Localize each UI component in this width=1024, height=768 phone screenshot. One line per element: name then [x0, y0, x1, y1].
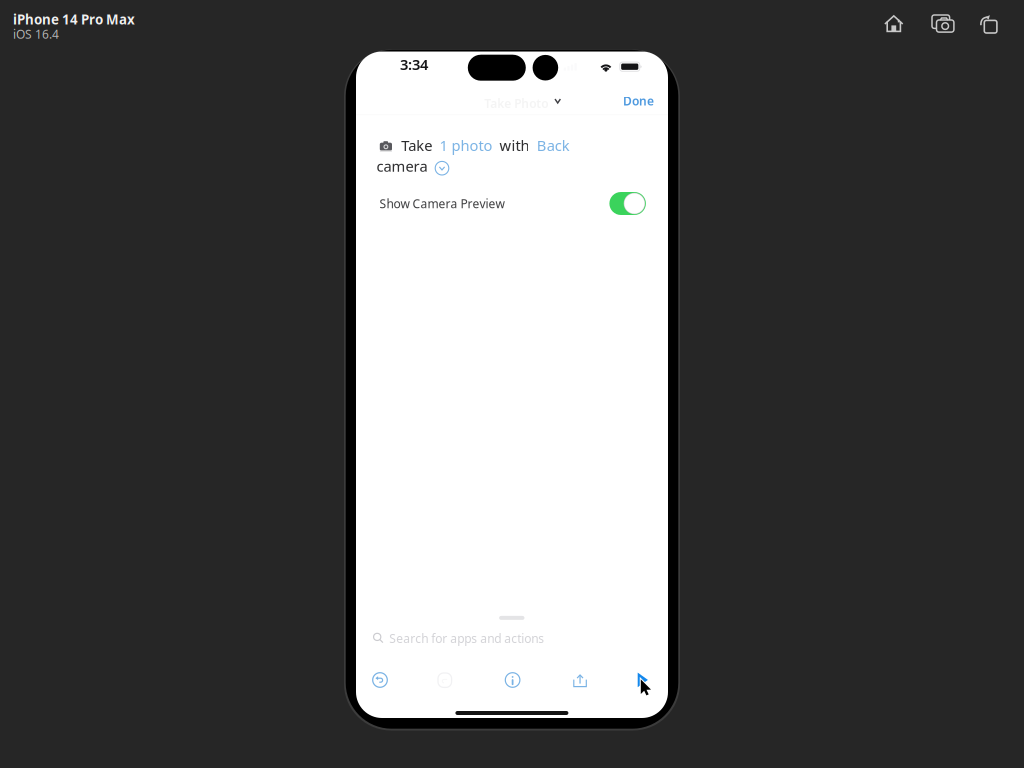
button[interactable]: Run shortcut	[632, 667, 654, 693]
button[interactable]: Information	[499, 666, 527, 694]
staticText: Show Camera Preview	[380, 196, 505, 211]
staticText: Search for apps and actions	[389, 630, 544, 646]
button[interactable]: Redo	[431, 666, 459, 694]
button[interactable]: Share	[974, 9, 1003, 39]
button[interactable]: Home	[878, 9, 910, 38]
button[interactable]: Back	[537, 135, 570, 155]
button[interactable]: Share	[567, 668, 593, 693]
button[interactable]: Show Camera Preview	[609, 192, 646, 215]
button[interactable]: 1 photo	[439, 135, 492, 155]
staticText: 1 photo	[439, 135, 492, 155]
staticText: iOS 16.4	[13, 26, 59, 42]
staticText: 3:34	[400, 54, 428, 74]
staticText: Back	[537, 135, 570, 155]
button[interactable]: Screenshot	[926, 9, 960, 38]
staticText: with	[499, 135, 529, 155]
staticText: Take Photo	[484, 95, 548, 111]
button[interactable]: Show more options	[435, 161, 449, 176]
button[interactable]: Undo	[366, 666, 394, 694]
staticText: Done	[623, 93, 654, 109]
staticText: camera	[376, 156, 427, 176]
staticText: iPhone 14 Pro Max	[13, 10, 135, 28]
staticText: Take	[401, 135, 432, 155]
button[interactable]: Done	[616, 88, 661, 114]
